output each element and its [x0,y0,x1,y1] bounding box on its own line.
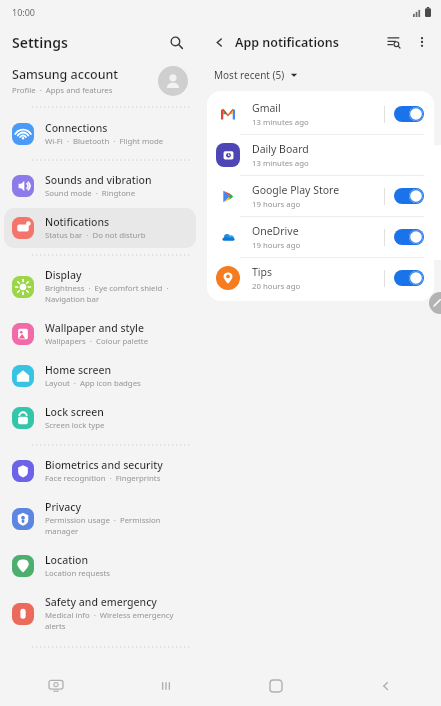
staticText: OneDrive [252,224,299,238]
staticText: 19 hours ago [252,199,301,210]
staticText: Home screen [45,363,112,377]
staticText: Safety and emergency [45,595,157,609]
button[interactable]: Location [4,546,196,586]
staticText: Layout · App icon badges [45,378,141,389]
button[interactable]: Gmail [207,94,434,135]
staticText: Lock screen [45,405,104,419]
staticText: 20 hours ago [252,281,301,292]
button[interactable]: Edit [429,292,441,314]
staticText: App notifications [235,34,339,51]
button[interactable]: Toggle notifications [394,106,424,122]
staticText: 10:00 [12,6,36,18]
staticText: Google Play Store [252,183,340,197]
staticText: Most recent (5) [214,68,285,82]
button[interactable]: Toggle notifications [394,229,424,245]
button[interactable]: Toggle notifications [394,270,424,286]
button[interactable]: Wallpaper and style [4,314,196,354]
staticText: Face recognition · Fingerprints [45,473,161,484]
button[interactable]: Tips [207,258,434,298]
staticText: Wallpapers · Colour palette [45,336,149,347]
staticText: Connections [45,121,108,135]
button[interactable]: Recent apps [111,666,221,706]
staticText: Notifications [45,215,110,229]
button[interactable]: Samsung account [0,60,200,102]
button[interactable]: Back [331,666,441,706]
staticText: Settings [12,33,68,52]
button[interactable]: Search settings [383,31,405,53]
staticText: Wallpaper and style [45,321,144,335]
button[interactable]: OneDrive [207,217,434,258]
staticText: 13 minutes ago [252,117,309,128]
button[interactable]: Screenshot [0,666,111,706]
staticText: Gmail [252,101,281,115]
staticText: Tips [252,265,273,279]
staticText: Permission usage · Permission manager [45,515,188,537]
button[interactable]: Biometrics and security [4,451,196,491]
button[interactable]: More options [411,31,433,53]
staticText: 13 minutes ago [252,158,309,169]
button[interactable]: Connections [4,114,196,154]
staticText: Daily Board [252,142,309,156]
button[interactable]: Google Play Store [207,176,434,217]
button[interactable]: Home [221,666,331,706]
staticText: Medical info · Wireless emergency alerts [45,610,188,632]
button[interactable]: Privacy [4,493,196,544]
staticText: Sound mode · Ringtone [45,188,136,199]
button[interactable]: Most recent (5) [212,66,300,84]
staticText: Privacy [45,500,81,514]
button[interactable]: Safety and emergency [4,588,196,639]
staticText: Status bar · Do not disturb [45,230,146,241]
button[interactable]: Home screen [4,356,196,396]
staticText: Sounds and vibration [45,173,152,187]
button[interactable]: Daily Board [207,135,434,176]
staticText: Samsung account [12,66,119,83]
staticText: Biometrics and security [45,458,163,472]
staticText: Brightness · Eye comfort shield · Naviga… [45,283,169,305]
staticText: Location [45,553,89,567]
staticText: Wi-Fi · Bluetooth · Flight mode [45,136,164,147]
staticText: 19 hours ago [252,240,301,251]
staticText: Screen lock type [45,420,105,431]
button[interactable]: Sounds and vibration [4,166,196,206]
button[interactable]: Toggle notifications [394,188,424,204]
button[interactable]: Lock screen [4,398,196,438]
button[interactable]: Back [208,31,230,53]
staticText: Display [45,268,82,282]
button[interactable]: Search [164,30,188,54]
button[interactable]: Display [4,261,196,312]
staticText: Profile · Apps and features [12,85,113,96]
button[interactable]: Notifications [4,208,196,248]
staticText: Location requests [45,568,111,579]
